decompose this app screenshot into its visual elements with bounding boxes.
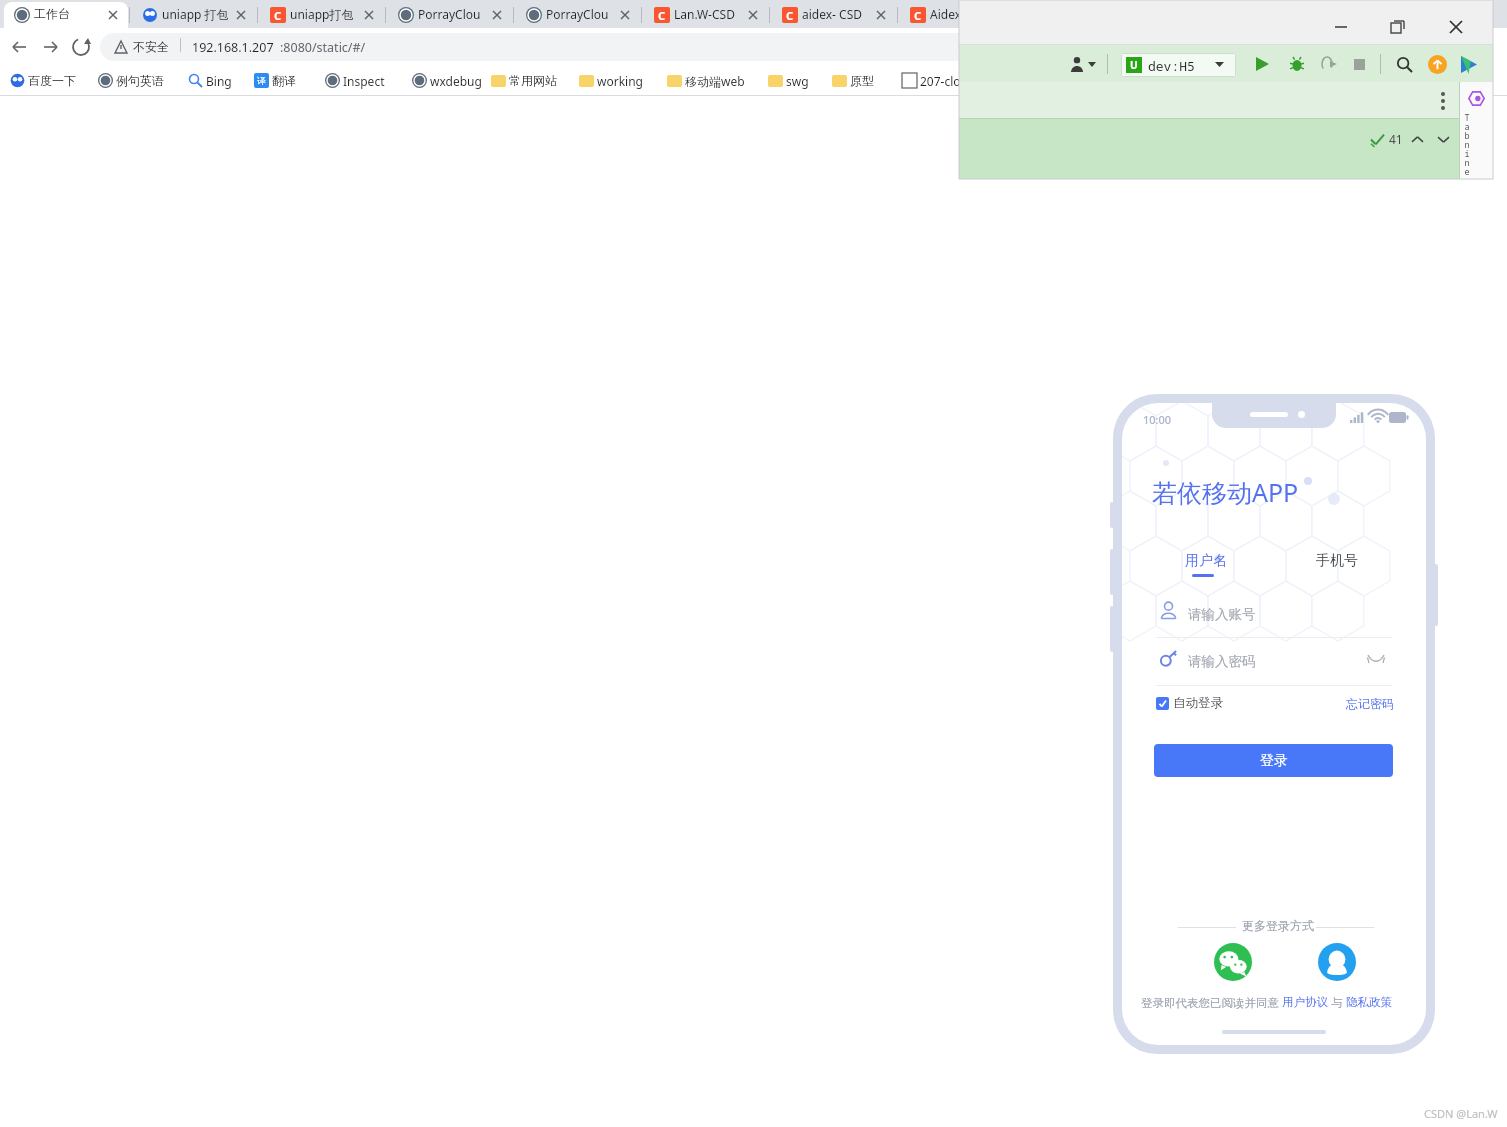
- button[interactable]: 用户协议: [1282, 995, 1328, 1009]
- staticText: C: [914, 8, 922, 23]
- staticText: Bing: [206, 73, 232, 89]
- button[interactable]: Debug: [1289, 56, 1305, 72]
- staticText: CSDN @Lan.W: [1424, 1106, 1498, 1121]
- staticText: 不安全: [133, 39, 169, 54]
- staticText: 192.168.1.207: [192, 39, 274, 56]
- staticText: 移动端web: [685, 73, 745, 89]
- staticText: 工作台: [34, 6, 70, 21]
- button[interactable]: [132, 2, 256, 28]
- button[interactable]: More options: [1441, 91, 1445, 109]
- button[interactable]: 用户名: [1176, 546, 1236, 576]
- button[interactable]: [1412, 2, 1507, 28]
- button[interactable]: 自动登录: [1156, 691, 1223, 715]
- button[interactable]: Search: [1396, 56, 1413, 73]
- button[interactable]: [408, 68, 496, 94]
- button[interactable]: [828, 68, 916, 94]
- staticText: Aidex 移动: [930, 6, 989, 22]
- button[interactable]: WeChat login: [1214, 943, 1252, 981]
- staticText: 若依移动APP: [1152, 475, 1299, 509]
- button[interactable]: Close window: [1449, 20, 1463, 34]
- button[interactable]: 隐私政策: [1346, 995, 1392, 1009]
- button[interactable]: Run: [1254, 56, 1270, 72]
- button[interactable]: 手机号: [1307, 546, 1367, 576]
- button[interactable]: [663, 68, 751, 94]
- button[interactable]: Reload: [70, 36, 92, 58]
- staticText: uniapp打包: [290, 6, 354, 22]
- button[interactable]: [1156, 643, 1392, 685]
- staticText: 翻译: [272, 73, 296, 88]
- button[interactable]: 登录: [1154, 744, 1393, 777]
- button[interactable]: [388, 2, 512, 28]
- button[interactable]: Restart: [1321, 56, 1337, 72]
- button[interactable]: Back: [8, 36, 30, 58]
- staticText: 207-clou: [920, 73, 968, 89]
- button[interactable]: [4, 2, 128, 28]
- staticText: 原型: [850, 73, 874, 88]
- button[interactable]: [772, 2, 896, 28]
- staticText: dev:H5: [1148, 57, 1195, 75]
- button[interactable]: Forward: [40, 36, 62, 58]
- button[interactable]: QQ login: [1318, 943, 1356, 981]
- button[interactable]: [764, 68, 852, 94]
- staticText: 与: [1328, 995, 1346, 1011]
- staticText: 10:00: [1143, 412, 1172, 427]
- button[interactable]: Next: [1437, 133, 1450, 146]
- button[interactable]: [487, 68, 575, 94]
- staticText: Lan.W-CSD: [674, 6, 735, 22]
- staticText: 常用网站: [509, 73, 557, 88]
- button[interactable]: 忘记密码: [1344, 691, 1394, 715]
- button[interactable]: Close tab: [234, 8, 248, 22]
- button[interactable]: [6, 68, 94, 94]
- button[interactable]: [900, 2, 1024, 28]
- button[interactable]: Close tab: [1386, 8, 1400, 22]
- staticText: 请输入密码: [1188, 653, 1256, 670]
- button[interactable]: [575, 68, 663, 94]
- button[interactable]: Upload: [1428, 55, 1447, 74]
- staticText: aidex- CSD: [802, 6, 863, 22]
- button[interactable]: [1121, 53, 1236, 77]
- button[interactable]: Account: [1069, 56, 1085, 72]
- button[interactable]: [184, 68, 272, 94]
- button[interactable]: [898, 68, 986, 94]
- staticText: 登录即代表您已阅读并同意: [1141, 995, 1282, 1011]
- staticText: 登录: [1260, 752, 1288, 770]
- staticText: PorrayClou: [546, 6, 609, 22]
- button[interactable]: [1284, 2, 1408, 28]
- button[interactable]: Close tab: [106, 8, 120, 22]
- staticText: 隐私政策: [1346, 995, 1392, 1009]
- staticText: 译: [257, 75, 266, 86]
- staticText: C: [274, 8, 282, 23]
- staticText: C: [786, 8, 794, 23]
- button[interactable]: [260, 2, 384, 28]
- button[interactable]: [94, 68, 182, 94]
- button[interactable]: Previous: [1411, 133, 1424, 146]
- button[interactable]: Minimize: [1334, 20, 1348, 34]
- staticText: uniapp 打包: [162, 6, 229, 22]
- button[interactable]: [516, 2, 640, 28]
- button[interactable]: Close tab: [490, 8, 504, 22]
- button[interactable]: Close tab: [874, 8, 888, 22]
- button[interactable]: [1156, 595, 1392, 637]
- button[interactable]: [644, 2, 768, 28]
- button[interactable]: [321, 68, 409, 94]
- button[interactable]: Close tab: [618, 8, 632, 22]
- staticText: 41: [1389, 131, 1403, 147]
- button[interactable]: Preview: [1459, 55, 1478, 74]
- button[interactable]: Show password: [1367, 652, 1385, 664]
- button[interactable]: Maximize: [1391, 20, 1404, 33]
- button[interactable]: Close tab: [362, 8, 376, 22]
- button[interactable]: [100, 33, 1440, 61]
- button[interactable]: [250, 68, 338, 94]
- staticText: 百度一下: [28, 73, 76, 88]
- button[interactable]: Close tab: [746, 8, 760, 22]
- staticText: :8080/static/#/: [280, 39, 366, 56]
